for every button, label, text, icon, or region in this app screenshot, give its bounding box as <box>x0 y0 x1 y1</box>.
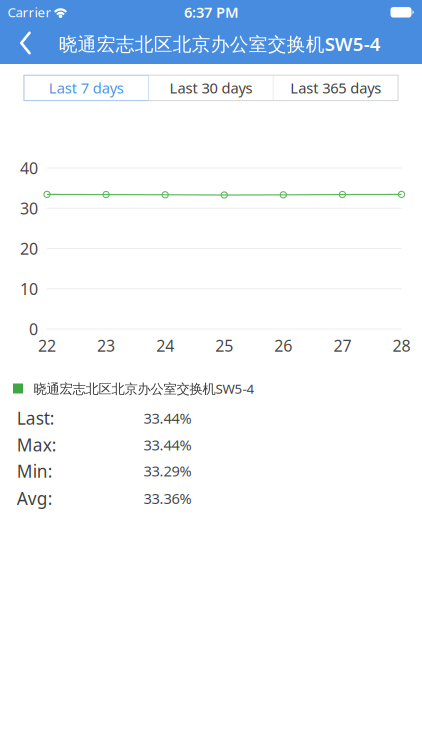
staticText: Carrier <box>7 3 51 21</box>
staticText: 28 <box>392 335 410 356</box>
staticText: 26 <box>274 335 292 356</box>
staticText: 晓通宏志北区北京办公室交换机SW5-4 <box>33 380 254 397</box>
staticText: 22 <box>38 335 56 356</box>
staticText: 0 <box>29 318 38 340</box>
staticText: Max: <box>17 433 57 456</box>
staticText: 晓通宏志北区北京办公室交换机SW5-4 <box>59 31 381 56</box>
staticText: Last 7 days <box>49 78 124 98</box>
staticText: 33.44% <box>144 408 192 428</box>
staticText: 23 <box>97 335 115 356</box>
button[interactable]: Last 30 days <box>149 75 273 101</box>
staticText: 24 <box>156 335 174 356</box>
staticText: 30 <box>20 198 38 219</box>
staticText: Last 365 days <box>290 78 381 98</box>
button[interactable]: Last 365 days <box>273 75 398 101</box>
staticText: 33.44% <box>144 435 192 454</box>
staticText: Min: <box>17 459 53 482</box>
button[interactable]: Last 7 days <box>24 75 149 101</box>
staticText: Last: <box>17 406 55 429</box>
staticText: 6:37 PM <box>184 2 239 22</box>
staticText: 40 <box>20 157 38 179</box>
button[interactable]: Back <box>8 28 46 59</box>
staticText: Last 30 days <box>169 78 252 98</box>
staticText: 10 <box>20 278 38 299</box>
staticText: 33.29% <box>144 461 192 481</box>
staticText: 20 <box>20 238 38 259</box>
staticText: 33.36% <box>144 488 192 508</box>
staticText: Avg: <box>17 487 53 510</box>
staticText: 27 <box>333 335 351 356</box>
staticText: 25 <box>215 335 233 356</box>
